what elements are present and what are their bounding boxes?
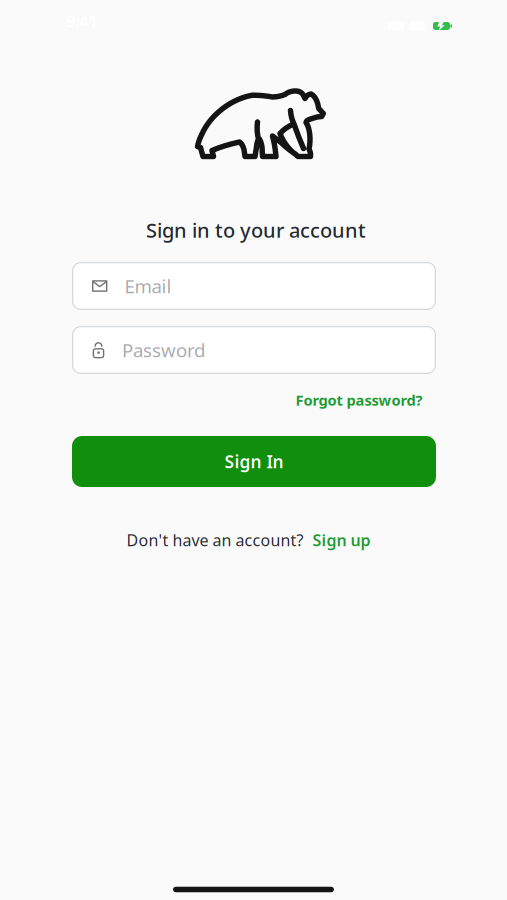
staticText: Sign in to your account bbox=[146, 217, 366, 243]
button[interactable]: Forgot password? bbox=[295, 390, 422, 410]
button[interactable]: Sign In bbox=[72, 436, 436, 487]
staticText: Forgot password? bbox=[295, 390, 422, 410]
staticText: Email bbox=[124, 274, 171, 298]
staticText: Password bbox=[122, 338, 205, 362]
staticText: Don't have an account? bbox=[126, 529, 303, 551]
button[interactable]: Password bbox=[72, 326, 436, 374]
button[interactable]: Sign up bbox=[312, 529, 370, 551]
staticText: Sign up bbox=[312, 529, 370, 551]
staticText: Sign In bbox=[224, 450, 283, 473]
button[interactable]: Email bbox=[72, 262, 436, 310]
